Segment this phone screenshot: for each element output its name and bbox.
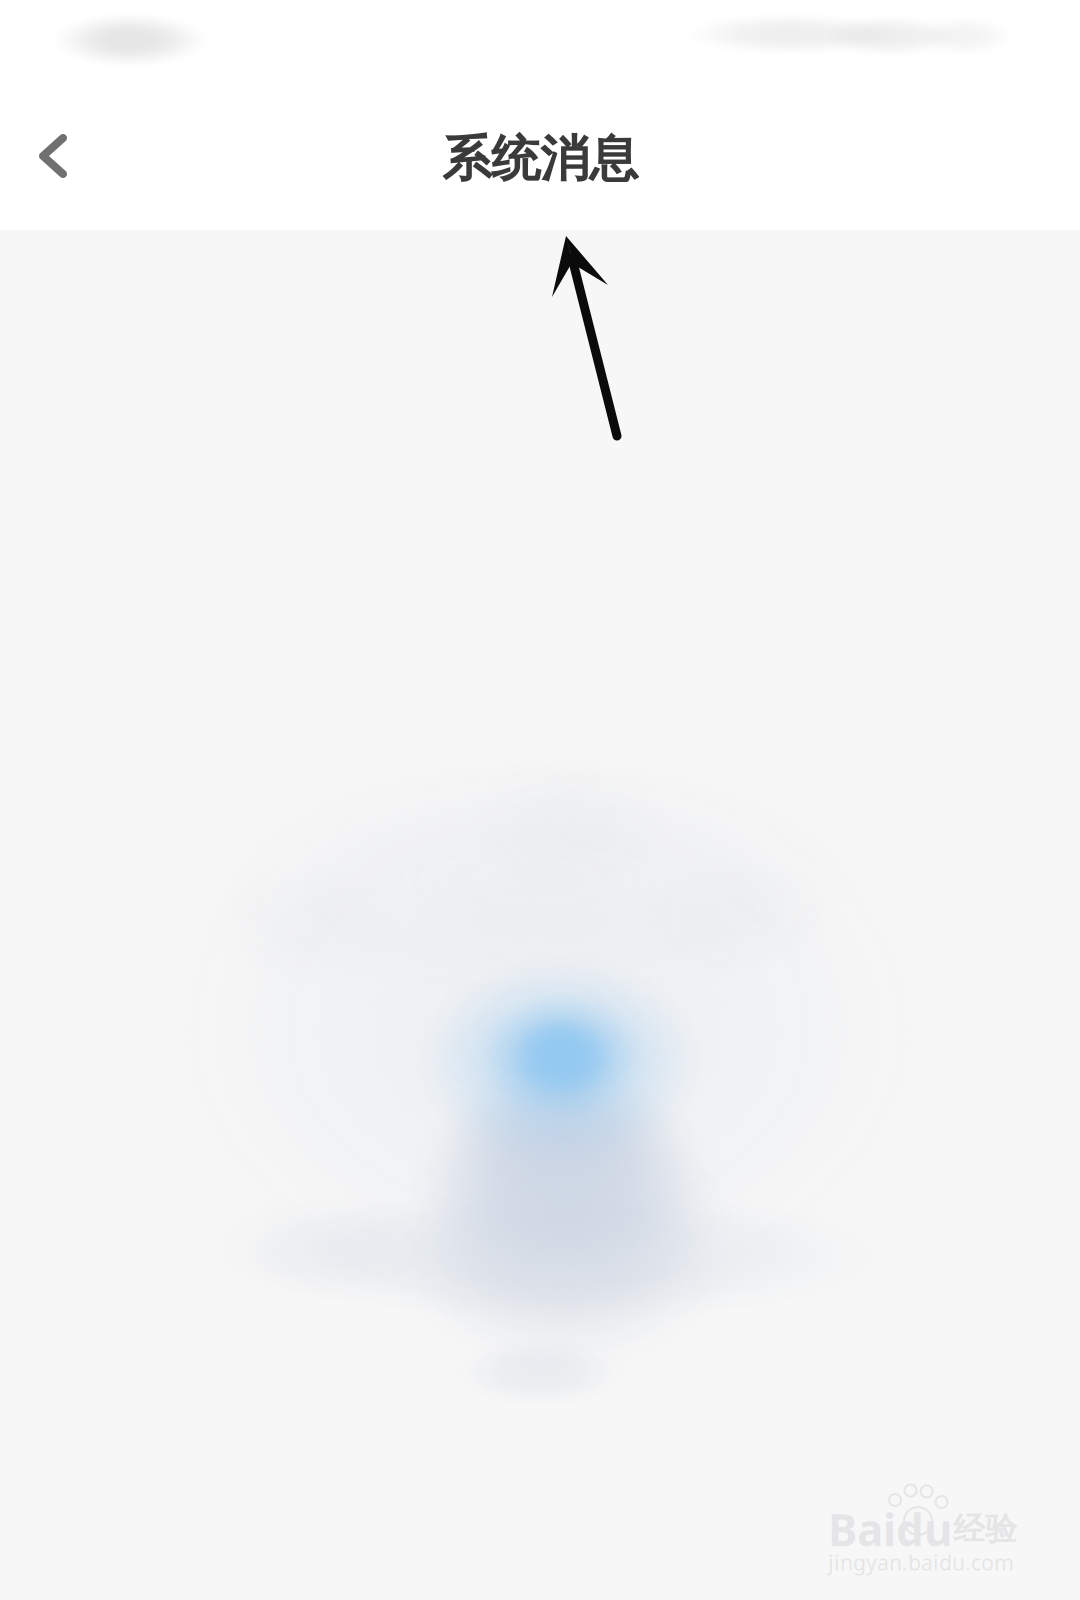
staticText: 系统消息	[442, 129, 638, 189]
staticText: du	[896, 1500, 953, 1558]
staticText: 经验	[953, 1510, 1017, 1549]
staticText: Bai	[828, 1500, 896, 1558]
button[interactable]: 返回	[1, 104, 105, 208]
staticText: jingyan.baidu.com	[828, 1548, 1014, 1576]
